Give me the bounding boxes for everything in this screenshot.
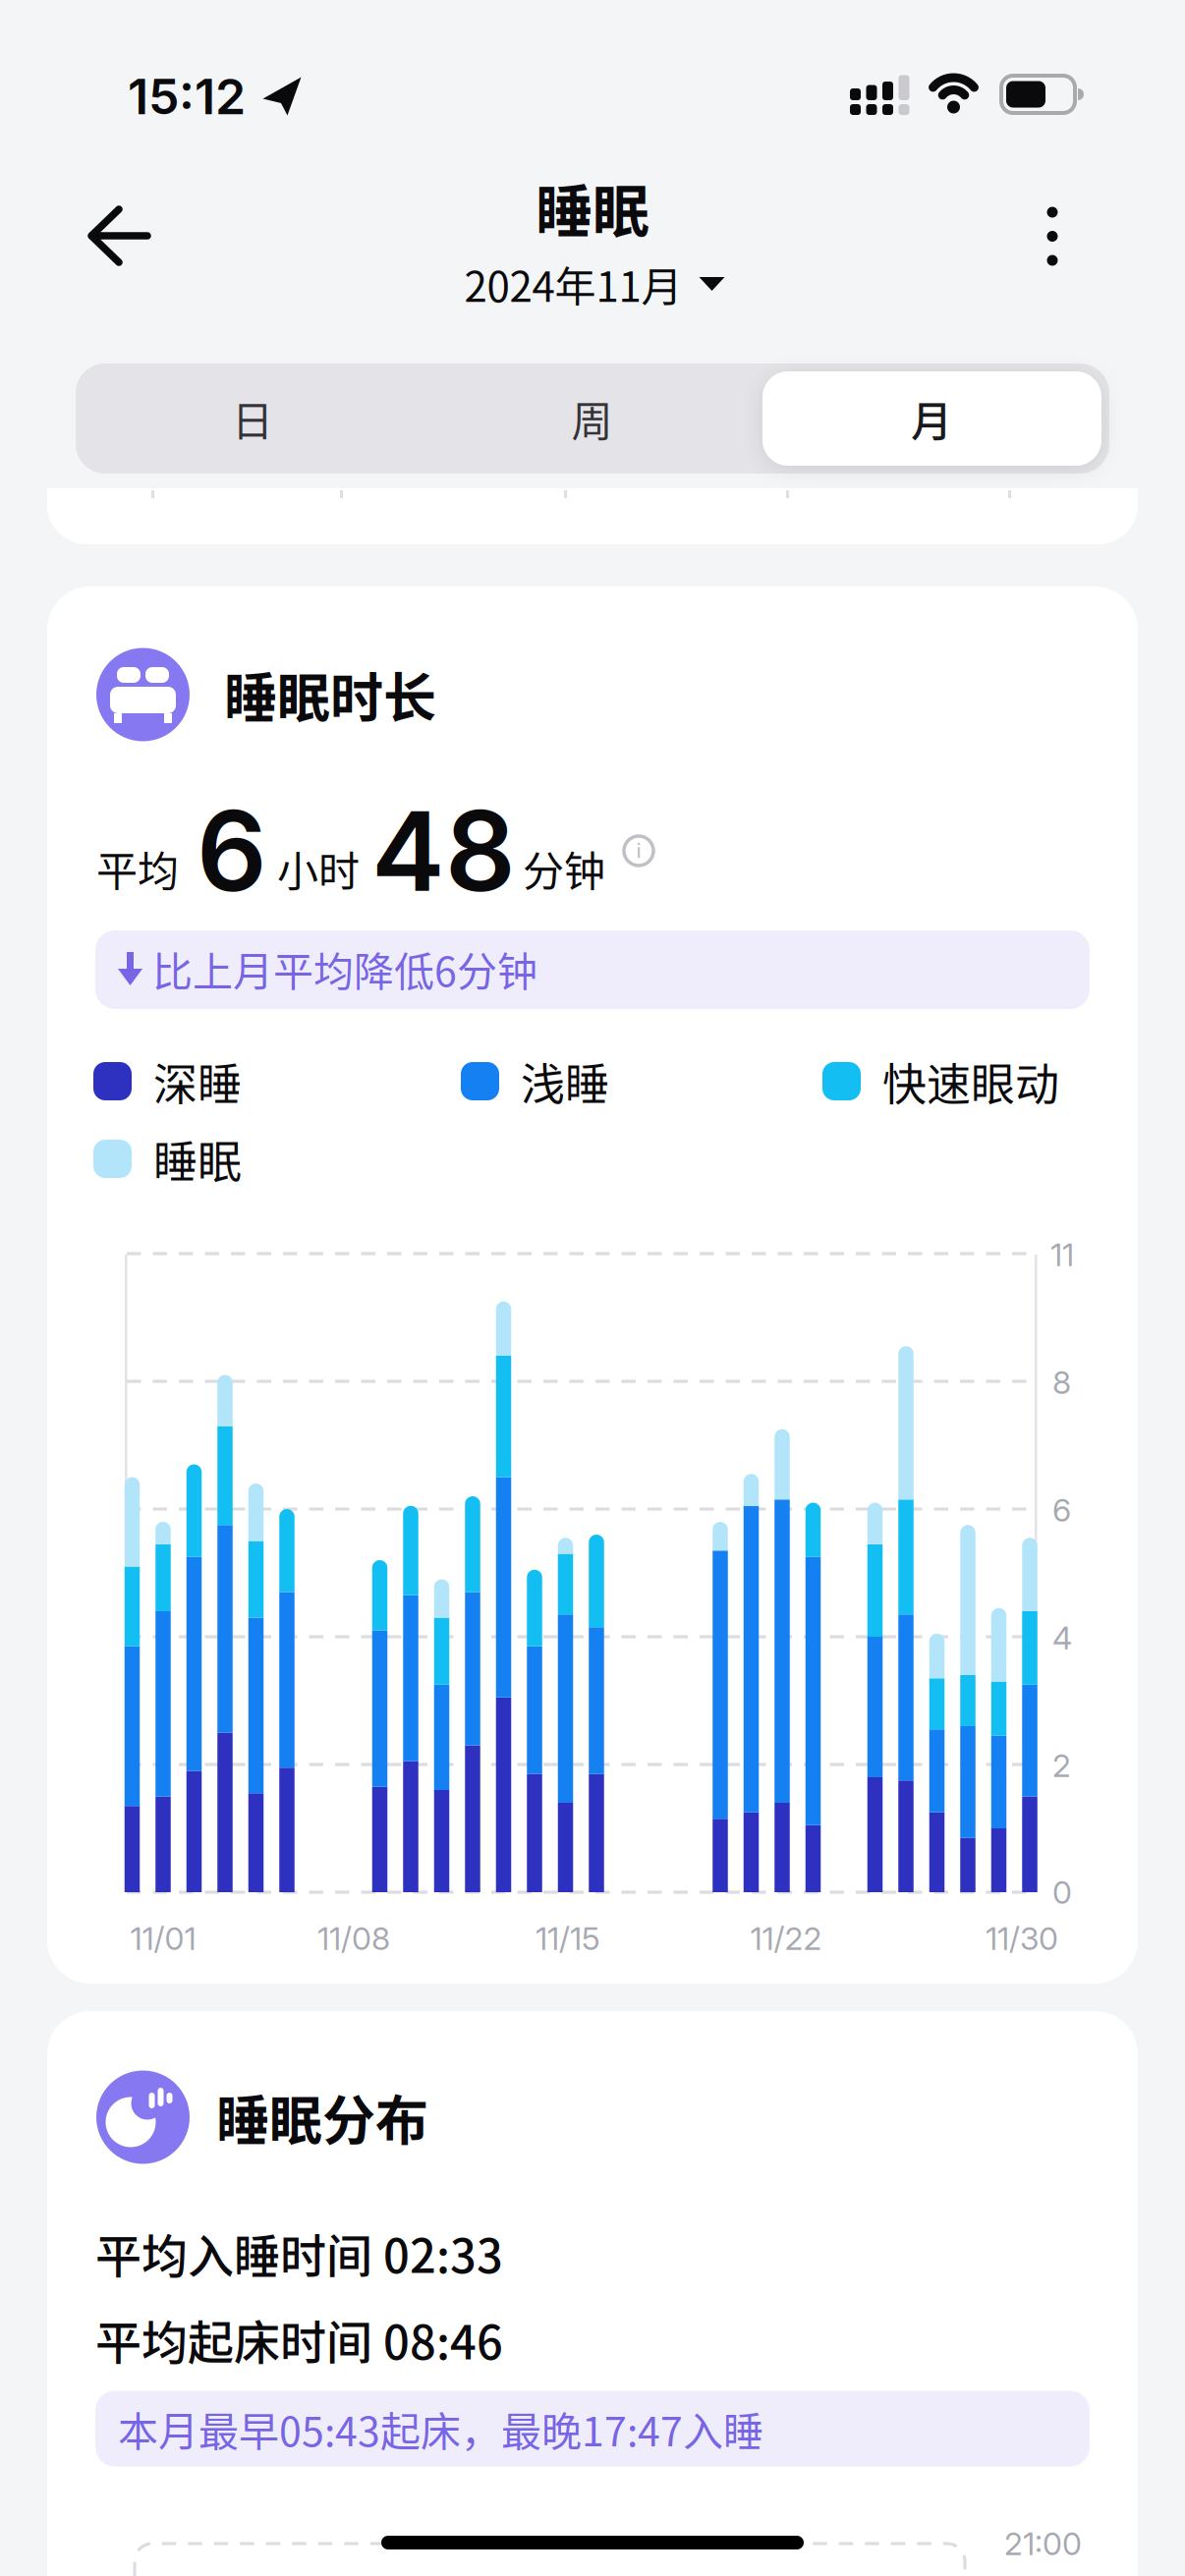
staticText: 6 (1052, 1491, 1071, 1529)
button[interactable]: Back (65, 182, 173, 290)
staticText: 11/08 (317, 1919, 390, 1957)
staticText: 21:00 (1004, 2525, 1082, 2563)
button[interactable]: 2024年11月 (464, 254, 725, 314)
button[interactable]: Info (617, 829, 660, 872)
staticText: 深睡 (153, 1050, 242, 1114)
staticText: 周 (571, 389, 613, 448)
button[interactable]: 日 (84, 364, 423, 474)
staticText: i (636, 839, 641, 863)
staticText: 睡眠 (153, 1127, 242, 1191)
staticText: 4 (1052, 1619, 1072, 1657)
button[interactable]: 月 (762, 364, 1101, 474)
staticText: 日 (232, 389, 273, 448)
staticText: 比上月平均降低6分钟 (152, 940, 537, 998)
staticText: 48 (371, 784, 516, 917)
staticText: 浅睡 (521, 1050, 609, 1114)
staticText: 6 (197, 784, 267, 917)
staticText: 睡眠分布 (216, 2079, 428, 2156)
staticText: 15:12 (128, 67, 246, 126)
staticText: 分钟 (523, 839, 605, 898)
staticText: 11/01 (130, 1919, 196, 1957)
button[interactable]: More (1003, 196, 1101, 275)
staticText: 平均入睡时间 02:33 (95, 2219, 503, 2286)
button[interactable]: 周 (423, 364, 762, 474)
staticText: 月 (911, 389, 952, 448)
staticText: 2024年11月 (464, 254, 682, 314)
staticText: 2 (1052, 1746, 1071, 1784)
staticText: 11/22 (750, 1919, 822, 1957)
staticText: 小时 (277, 839, 360, 898)
staticText: 平均 (96, 839, 179, 898)
staticText: 11/30 (986, 1919, 1058, 1957)
staticText: 本月最早05:43起床，最晚17:47入睡 (118, 2399, 763, 2458)
staticText: 0 (1052, 1873, 1072, 1911)
staticText: 睡眠时长 (224, 656, 436, 733)
staticText: 8 (1052, 1363, 1071, 1401)
staticText: 睡眠 (536, 166, 649, 249)
staticText: 11 (1050, 1236, 1074, 1274)
staticText: 快速眼动 (882, 1050, 1059, 1114)
staticText: 平均起床时间 08:46 (95, 2306, 503, 2373)
staticText: 11/15 (536, 1919, 600, 1957)
